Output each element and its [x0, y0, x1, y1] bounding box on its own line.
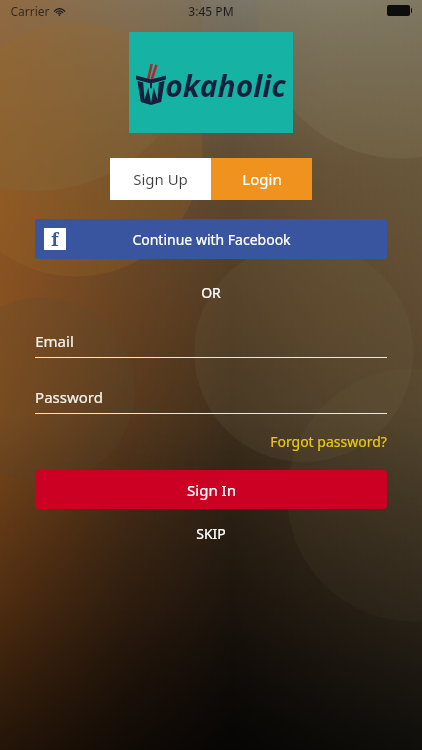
staticText: 3:45 PM [188, 3, 234, 19]
button[interactable]: Forgot password? [270, 432, 387, 451]
staticText: Continue with Facebook [132, 230, 291, 249]
button[interactable]: Sign Up [110, 158, 211, 200]
button[interactable]: Email [35, 331, 387, 358]
staticText: Email [35, 331, 74, 351]
staticText: Sign Up [133, 169, 188, 189]
staticText: OR [201, 283, 221, 302]
staticText: SKIP [196, 524, 226, 543]
staticText: Carrier [10, 3, 50, 19]
staticText: okaholic [165, 65, 286, 106]
button[interactable]: Sign In [35, 470, 387, 509]
button[interactable]: SKIP [182, 520, 240, 547]
staticText: Login [242, 169, 282, 189]
staticText: Password [35, 387, 103, 407]
button[interactable]: Continue with Facebook [35, 219, 387, 259]
button[interactable]: Login [211, 158, 312, 200]
staticText: Forgot password? [270, 432, 387, 451]
staticText: Sign In [187, 480, 236, 500]
button[interactable]: Password [35, 387, 387, 414]
staticText: f [51, 227, 59, 249]
